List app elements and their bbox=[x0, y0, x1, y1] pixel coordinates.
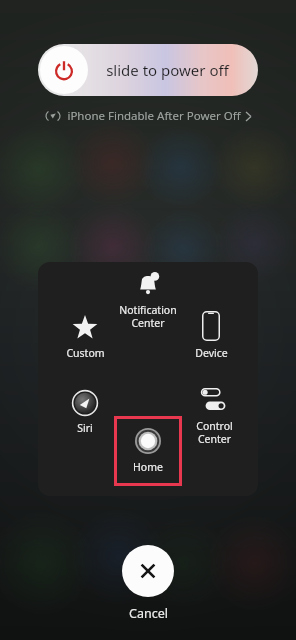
button[interactable]: Power off bbox=[38, 44, 258, 96]
staticText: Siri bbox=[77, 421, 93, 435]
button[interactable]: iPhone Findable After Power Off bbox=[0, 108, 296, 124]
button[interactable]: Notification Center bbox=[117, 270, 179, 330]
staticText: Control Center bbox=[196, 419, 233, 446]
staticText: Home bbox=[133, 460, 163, 474]
staticText: iPhone Findable After Power Off bbox=[67, 108, 241, 124]
staticText: slide to power off bbox=[106, 60, 229, 80]
staticText: Device bbox=[195, 346, 228, 360]
button[interactable]: Custom bbox=[54, 315, 116, 360]
staticText: Custom bbox=[66, 346, 105, 360]
button[interactable]: Power off bbox=[40, 46, 88, 94]
button[interactable]: Cancel bbox=[122, 545, 174, 622]
staticText: Notification Center bbox=[119, 303, 177, 330]
button[interactable]: Home bbox=[117, 419, 179, 483]
button[interactable]: Device bbox=[180, 311, 242, 360]
staticText: Cancel bbox=[129, 605, 168, 622]
button[interactable]: Control Center bbox=[183, 388, 245, 446]
button[interactable]: Siri bbox=[54, 390, 116, 435]
